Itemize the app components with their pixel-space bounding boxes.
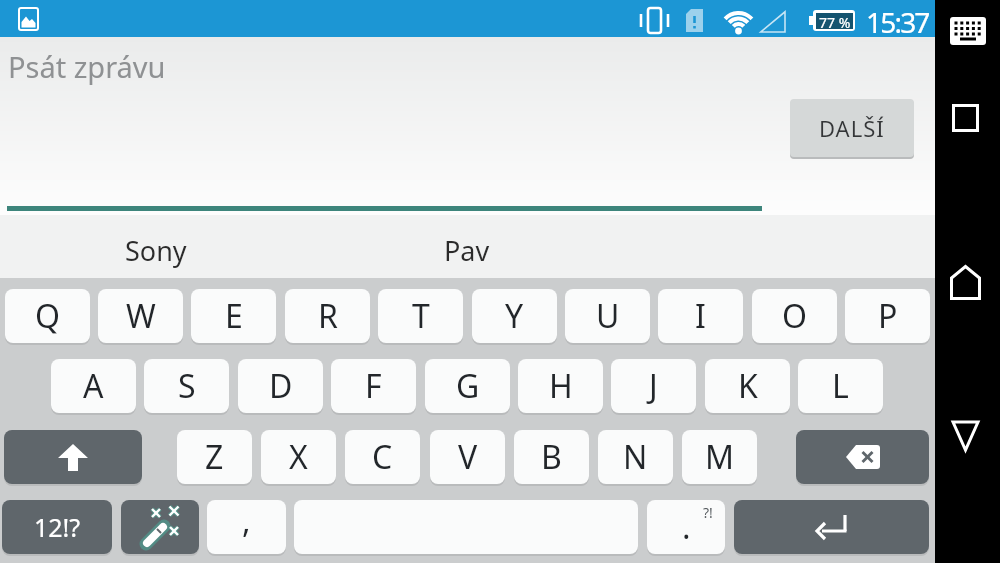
staticText: P [878,294,898,338]
staticText: , [242,500,251,543]
staticText: B [541,435,562,479]
staticText: E [225,294,243,338]
staticText: X [289,435,308,479]
staticText: K [738,364,758,408]
staticText: W [126,294,156,338]
staticText: Z [205,435,224,479]
staticText: Y [505,294,524,338]
staticText: Pav [444,232,490,269]
staticText: V [458,435,478,479]
staticText: 12!? [34,510,81,544]
staticText: ?! [703,503,713,522]
staticText: DALŠÍ [819,113,885,143]
staticText: F [365,364,382,408]
staticText: . [682,505,691,549]
staticText: O [782,294,807,338]
staticText: Sony [125,232,187,269]
staticText: 77 % [819,13,851,29]
staticText: L [832,364,849,408]
staticText: G [456,364,480,408]
staticText: Q [35,294,60,338]
staticText: C [372,435,393,479]
staticText: J [649,364,658,408]
staticText: U [596,294,620,338]
staticText: I [695,294,706,338]
staticText: D [269,364,293,408]
staticText: R [318,294,338,338]
staticText: N [623,435,648,479]
staticText: A [83,364,104,408]
staticText: T [412,294,430,338]
staticText: M [705,435,735,479]
staticText: Psát zprávu [8,47,166,86]
staticText: H [549,364,573,408]
staticText: 15:37 [866,3,929,41]
staticText: S [178,364,196,408]
